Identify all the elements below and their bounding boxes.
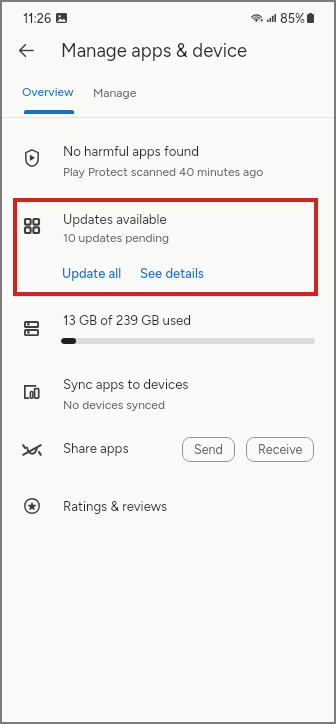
staticText: 85% (280, 11, 305, 26)
staticText: Ratings & reviews (63, 498, 168, 514)
button[interactable]: See details (134, 262, 210, 286)
button[interactable]: Overview (10, 74, 86, 116)
staticText: No devices synced (63, 398, 165, 412)
button[interactable]: Back (7, 31, 45, 69)
button[interactable]: Send (182, 437, 235, 462)
staticText: Sync apps to devices (63, 376, 189, 392)
staticText: Manage apps & device (61, 39, 248, 61)
staticText: Send (194, 442, 223, 457)
staticText: 10 updates pending (63, 231, 170, 245)
button[interactable] (0, 203, 336, 247)
button[interactable]: Manage (83, 74, 147, 116)
staticText: Updates available (63, 211, 167, 227)
staticText: Play Protect scanned 40 minutes ago (63, 165, 264, 179)
button[interactable] (0, 489, 336, 527)
button[interactable] (0, 369, 336, 415)
staticText: Receive (258, 442, 303, 457)
button[interactable] (0, 305, 336, 351)
staticText: 13 GB of 239 GB used (63, 312, 192, 328)
staticText: 11:26 (23, 11, 52, 26)
staticText: See details (140, 266, 204, 282)
button[interactable] (0, 135, 336, 181)
button[interactable] (0, 431, 175, 469)
button[interactable]: Update all (56, 262, 128, 286)
staticText: No harmful apps found (63, 143, 199, 159)
staticText: Share apps (63, 440, 129, 456)
button[interactable]: Receive (246, 437, 314, 462)
staticText: Overview (22, 85, 74, 99)
staticText: Manage (93, 85, 137, 100)
staticText: Update all (62, 266, 122, 282)
